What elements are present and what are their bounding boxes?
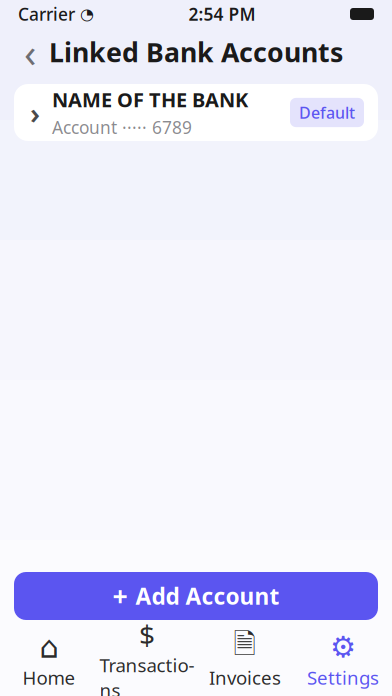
button[interactable]: ⌂ <box>0 629 98 696</box>
button[interactable]: Back <box>8 30 52 74</box>
staticText: Add Account <box>135 581 279 611</box>
button[interactable]: + <box>14 572 378 620</box>
staticText: Linked Bank Accounts <box>49 34 343 70</box>
staticText: ◔ <box>80 5 94 23</box>
staticText: NAME OF THE BANK <box>52 86 248 113</box>
button[interactable]: ⚙ <box>294 629 392 696</box>
staticText: Settings <box>307 665 379 690</box>
button[interactable]: 🗎 <box>196 629 294 696</box>
staticText: Account ····· 6789 <box>52 116 192 139</box>
staticText: Invoices <box>209 665 281 690</box>
staticText: Transactions <box>99 653 194 696</box>
button[interactable]: $ <box>98 629 196 696</box>
staticText: $ <box>139 616 155 653</box>
staticText: 🗎 <box>233 624 256 670</box>
staticText: › <box>30 93 40 132</box>
staticText: Default <box>299 102 355 123</box>
staticText: 2:54 PM <box>188 2 255 25</box>
staticText: + <box>112 578 127 614</box>
staticText: Carrier <box>18 2 75 25</box>
staticText: Home <box>22 665 75 690</box>
staticText: ⚙ <box>330 630 356 664</box>
staticText: ⌂ <box>39 630 58 664</box>
button[interactable]: › <box>14 84 378 141</box>
staticText: ‹ <box>24 25 36 78</box>
